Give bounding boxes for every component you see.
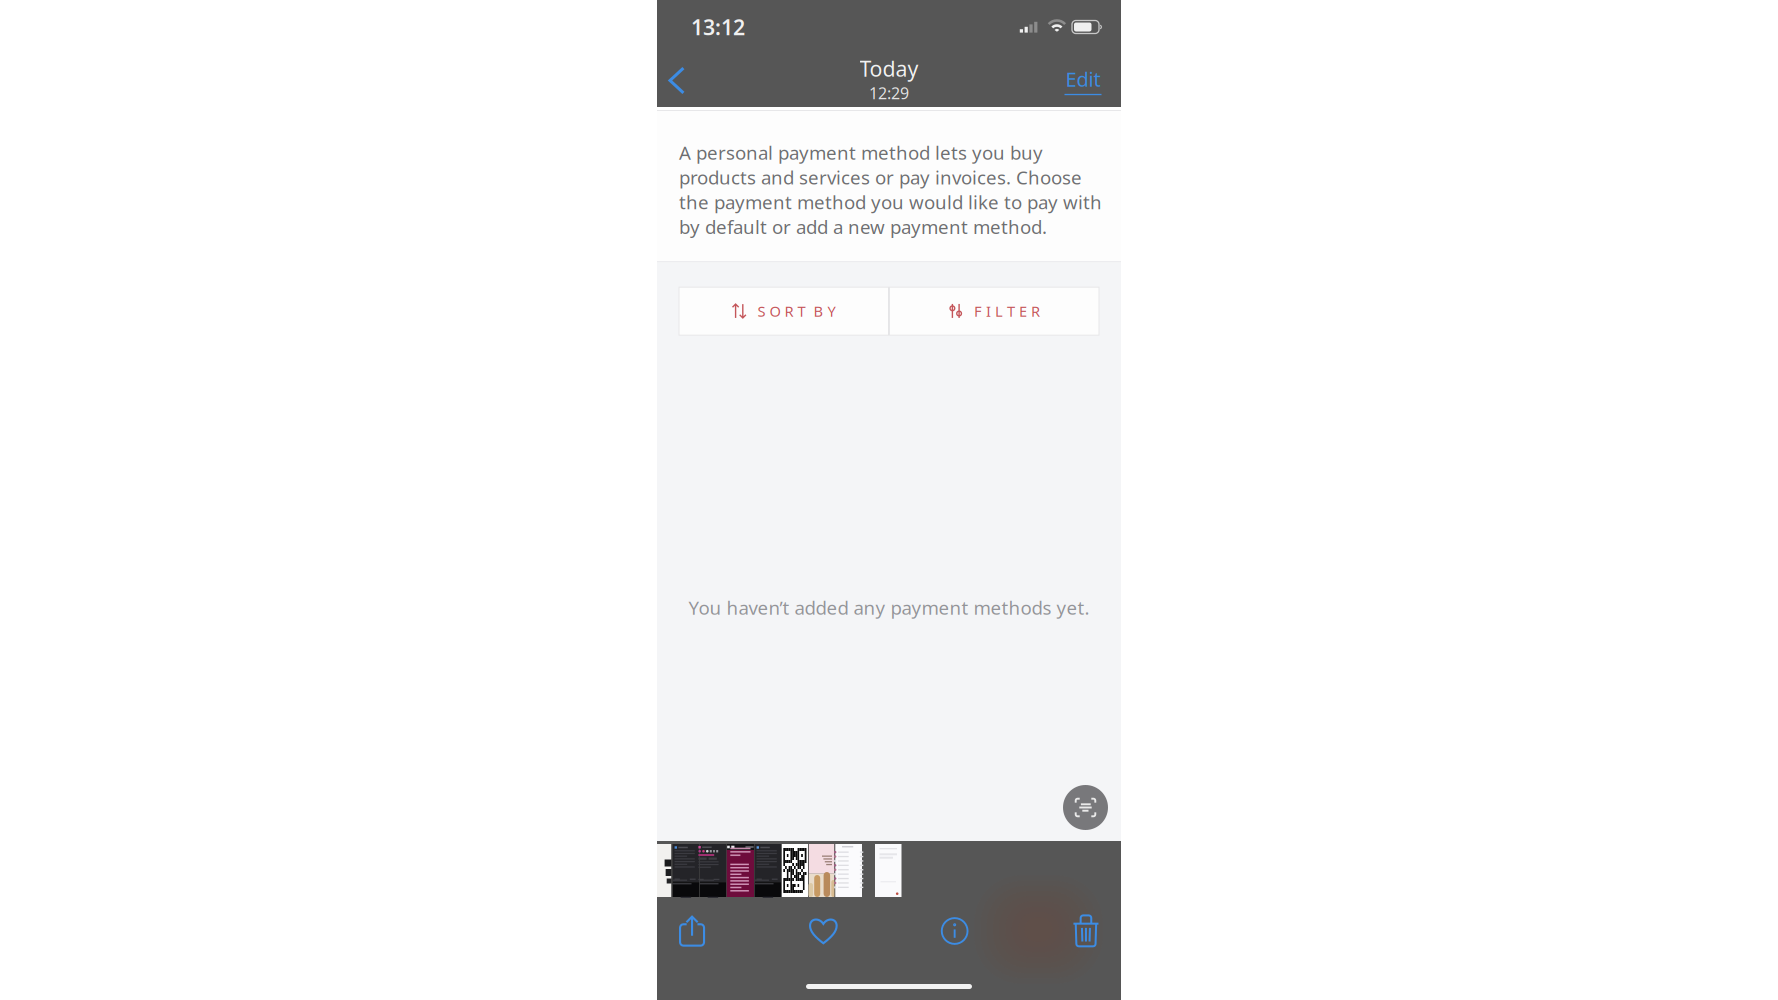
staticText: F I L T E R xyxy=(974,301,1040,321)
button[interactable]: Favourite xyxy=(788,915,858,947)
button[interactable]: Edit xyxy=(1060,55,1115,106)
staticText: 13:12 xyxy=(691,13,745,41)
button[interactable]: Delete xyxy=(1051,915,1121,947)
button[interactable]: Back xyxy=(663,55,706,106)
staticText: Today xyxy=(859,54,918,82)
staticText: A personal payment method lets you buy p… xyxy=(679,140,1102,239)
staticText: Edit xyxy=(1065,66,1100,92)
staticText: 12:29 xyxy=(869,82,909,104)
button[interactable]: Live Text xyxy=(1063,785,1108,830)
button[interactable]: S O R T B Y xyxy=(679,287,888,335)
button[interactable]: F I L T E R xyxy=(889,287,1099,335)
staticText: You haven’t added any payment methods ye… xyxy=(688,595,1089,620)
button[interactable]: Share xyxy=(657,915,727,947)
button[interactable]: Info xyxy=(920,915,990,947)
staticText: S O R T B Y xyxy=(757,301,835,321)
